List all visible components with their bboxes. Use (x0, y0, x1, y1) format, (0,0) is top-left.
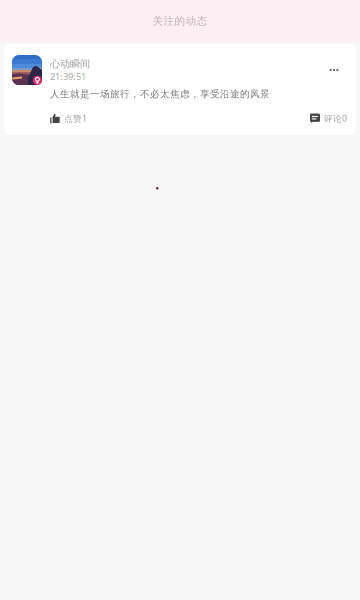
button[interactable]: 点赞1 (50, 112, 87, 125)
staticText: 点赞1 (64, 113, 87, 124)
staticText: 关注的动态 (152, 14, 207, 28)
staticText: 21:39:51 (50, 70, 86, 83)
staticText: 心动瞬间 (50, 58, 90, 70)
button[interactable]: 评论0 (310, 112, 347, 125)
button[interactable]: More options (323, 55, 348, 81)
staticText: 评论0 (324, 113, 347, 124)
staticText: 人生就是一场旅行，不必太焦虑，享受沿途的风景 (50, 88, 270, 100)
